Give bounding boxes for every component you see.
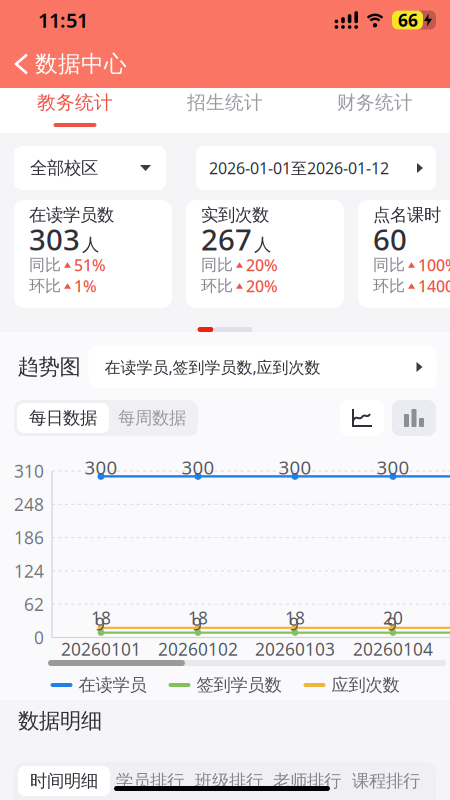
- button[interactable]: 2026-01-01至2026-01-12: [196, 146, 436, 190]
- staticText: 招生统计: [187, 91, 263, 114]
- staticText: 教务统计: [37, 91, 113, 114]
- staticText: 趋势图: [17, 354, 80, 380]
- staticText: 环比: [201, 276, 233, 296]
- staticText: 同比: [201, 255, 233, 275]
- staticText: 20260104: [353, 637, 433, 660]
- staticText: 60: [373, 219, 407, 258]
- staticText: 124: [14, 559, 44, 582]
- button[interactable]: 全部校区: [14, 146, 166, 190]
- button[interactable]: 课程排行: [346, 766, 426, 796]
- staticText: 1400%: [418, 275, 450, 297]
- staticText: 9: [289, 612, 299, 635]
- staticText: 在读学员,签到学员数,应到次数: [104, 356, 320, 378]
- staticText: 1%: [74, 275, 97, 297]
- staticText: 每日数据: [29, 407, 97, 429]
- button[interactable]: 时间明细: [18, 766, 110, 796]
- staticText: 18: [285, 606, 305, 629]
- staticText: 300: [84, 455, 117, 480]
- staticText: 老师排行: [273, 770, 341, 792]
- staticText: 300: [278, 455, 311, 480]
- staticText: 数据中心: [35, 50, 127, 78]
- staticText: 同比: [373, 255, 405, 275]
- button[interactable]: 教务统计: [0, 88, 150, 133]
- staticText: 班级排行: [195, 770, 263, 792]
- staticText: 267: [201, 219, 252, 258]
- staticText: 同比: [29, 255, 61, 275]
- button[interactable]: 老师排行: [268, 766, 346, 796]
- staticText: 20: [383, 606, 403, 629]
- button[interactable]: 班级排行: [190, 766, 268, 796]
- button[interactable]: 每周数据: [109, 403, 195, 433]
- button[interactable]: 财务统计: [300, 88, 450, 133]
- staticText: 51%: [74, 254, 106, 276]
- staticText: 11:51: [38, 7, 88, 33]
- staticText: 签到学员数: [196, 674, 281, 696]
- staticText: 20%: [246, 254, 278, 276]
- staticText: 9: [192, 612, 202, 635]
- staticText: 人: [254, 234, 271, 255]
- staticText: 全部校区: [30, 157, 98, 179]
- staticText: 学员排行: [116, 770, 184, 792]
- staticText: 62: [24, 593, 44, 616]
- staticText: 应到次数: [331, 674, 399, 696]
- staticText: 303: [29, 219, 80, 258]
- staticText: 环比: [373, 276, 405, 296]
- staticText: 0: [34, 626, 44, 649]
- staticText: 人: [82, 234, 99, 255]
- staticText: 每周数据: [118, 407, 186, 429]
- staticText: 186: [14, 526, 44, 549]
- staticText: 2026-01-01至2026-01-12: [209, 157, 389, 179]
- staticText: 9: [387, 612, 397, 635]
- staticText: 310: [14, 459, 44, 482]
- button[interactable]: 在读学员,签到学员数,应到次数: [88, 346, 436, 388]
- staticText: 66: [398, 8, 418, 31]
- staticText: 数据明细: [18, 708, 102, 734]
- staticText: 20260101: [61, 637, 141, 660]
- button[interactable]: Back: [0, 54, 27, 73]
- staticText: 实到次数: [201, 204, 269, 226]
- staticText: 环比: [29, 276, 61, 296]
- staticText: 点名课时: [373, 204, 441, 226]
- staticText: 18: [91, 606, 111, 629]
- staticText: 300: [376, 455, 409, 480]
- staticText: 在读学员数: [29, 204, 114, 226]
- button[interactable]: Line chart: [340, 400, 384, 436]
- button[interactable]: 每日数据: [17, 403, 109, 433]
- button[interactable]: 学员排行: [110, 766, 190, 796]
- button[interactable]: Bar chart: [392, 400, 436, 436]
- staticText: 财务统计: [337, 91, 413, 114]
- staticText: 时间明细: [30, 770, 98, 792]
- staticText: 300: [181, 455, 214, 480]
- staticText: 20260103: [255, 637, 335, 660]
- staticText: 在读学员: [78, 674, 146, 696]
- button[interactable]: 招生统计: [150, 88, 300, 133]
- staticText: 20260102: [158, 637, 238, 660]
- staticText: 18: [188, 606, 208, 629]
- staticText: 100%: [418, 254, 450, 276]
- staticText: 课程排行: [352, 770, 420, 792]
- staticText: 9: [95, 612, 105, 635]
- staticText: 20%: [246, 275, 278, 297]
- staticText: 248: [14, 493, 44, 516]
